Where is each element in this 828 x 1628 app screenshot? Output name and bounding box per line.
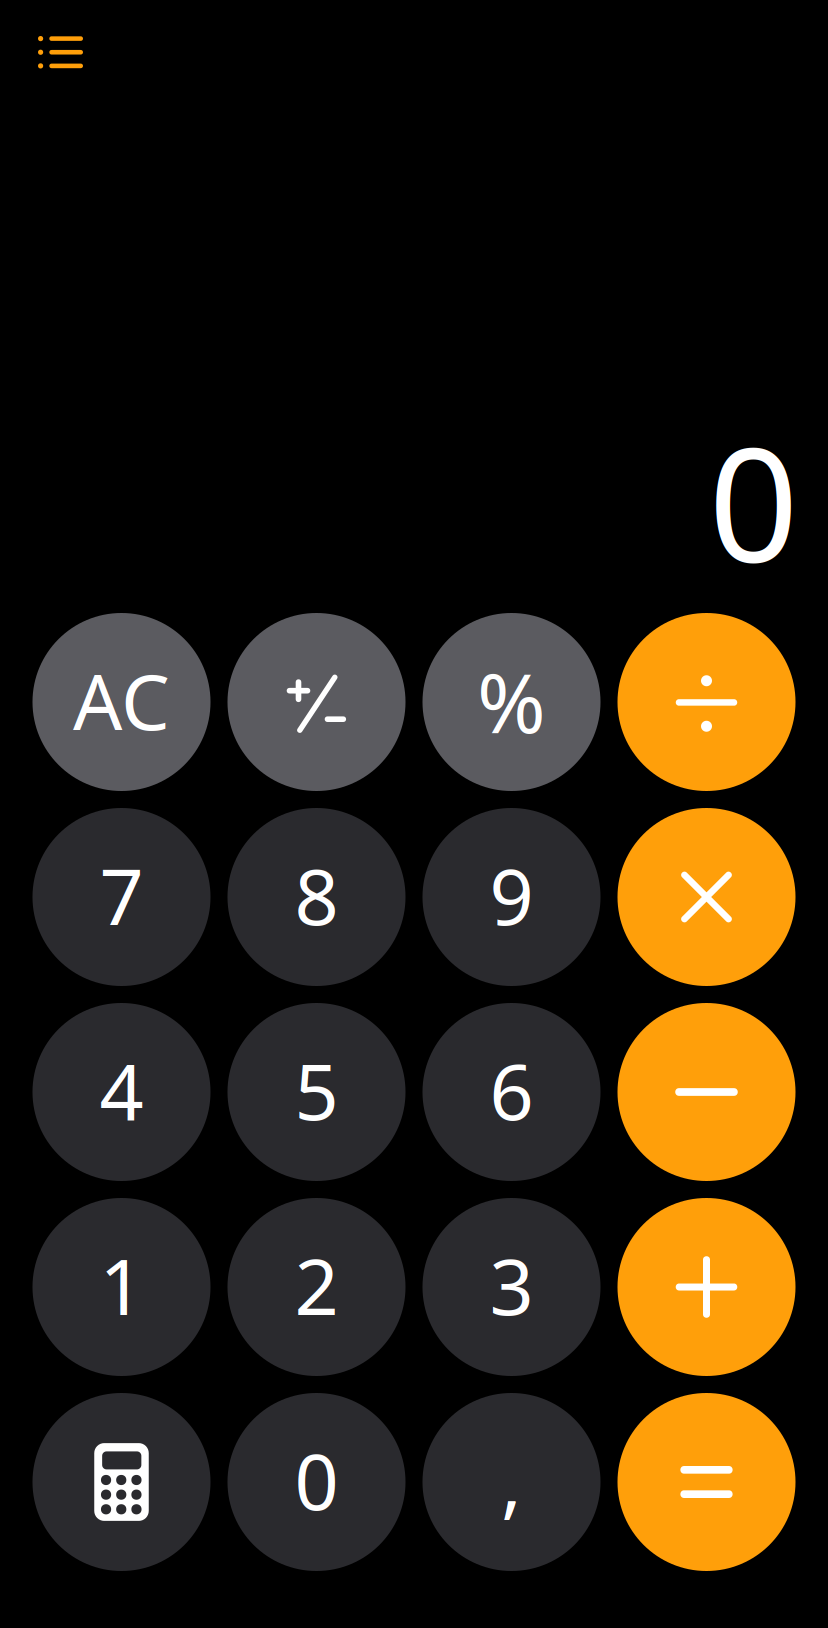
- button[interactable]: %: [422, 613, 600, 791]
- staticText: 8: [294, 844, 338, 946]
- staticText: 4: [99, 1039, 143, 1141]
- button[interactable]: Divide: [617, 613, 795, 791]
- button[interactable]: Multiply: [617, 808, 795, 986]
- button[interactable]: Toggle sign: [227, 613, 405, 791]
- staticText: 3: [489, 1234, 533, 1336]
- button[interactable]: Minus: [617, 1003, 795, 1181]
- button[interactable]: Plus: [617, 1198, 795, 1376]
- staticText: ,: [501, 1429, 522, 1531]
- button[interactable]: Equals: [617, 1393, 795, 1571]
- button[interactable]: History: [0, 3, 121, 101]
- staticText: 0: [294, 1429, 338, 1531]
- staticText: 7: [99, 844, 143, 946]
- button[interactable]: 2: [227, 1198, 405, 1376]
- button[interactable]: ,: [422, 1393, 600, 1571]
- staticText: %: [477, 646, 546, 756]
- button[interactable]: 1: [32, 1198, 210, 1376]
- button[interactable]: Calculator: [32, 1393, 210, 1571]
- button[interactable]: 6: [422, 1003, 600, 1181]
- button[interactable]: 9: [422, 808, 600, 986]
- button[interactable]: AC: [32, 613, 210, 791]
- staticText: 5: [294, 1039, 338, 1141]
- staticText: 9: [489, 844, 533, 946]
- staticText: AC: [73, 649, 170, 751]
- button[interactable]: 8: [227, 808, 405, 986]
- button[interactable]: 7: [32, 808, 210, 986]
- staticText: 6: [489, 1039, 533, 1141]
- staticText: 1: [99, 1234, 143, 1336]
- staticText: 2: [294, 1234, 338, 1336]
- button[interactable]: 0: [227, 1393, 405, 1571]
- button[interactable]: 4: [32, 1003, 210, 1181]
- staticText: 0: [708, 396, 798, 605]
- button[interactable]: 5: [227, 1003, 405, 1181]
- button[interactable]: 3: [422, 1198, 600, 1376]
